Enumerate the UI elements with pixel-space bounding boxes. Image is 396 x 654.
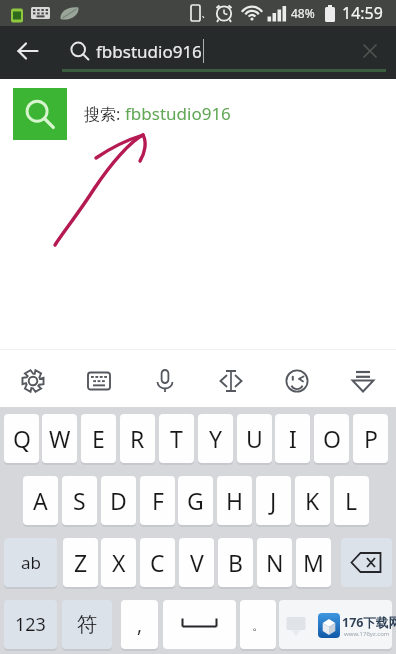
- button[interactable]: Backspace: [341, 538, 392, 587]
- staticText: C: [150, 547, 165, 578]
- button[interactable]: O: [314, 414, 349, 463]
- button[interactable]: Search: [0, 87, 396, 140]
- staticText: fbbstudio916: [96, 40, 202, 63]
- button[interactable]: I: [275, 414, 310, 463]
- staticText: K: [305, 485, 320, 516]
- button[interactable]: M: [296, 538, 331, 587]
- staticText: I: [289, 423, 297, 454]
- staticText: 176下载网: [342, 614, 396, 631]
- staticText: D: [110, 485, 127, 516]
- staticText: M: [303, 547, 324, 578]
- staticText: 搜索:: [84, 103, 125, 125]
- staticText: ab: [21, 551, 41, 574]
- staticText: 123: [15, 612, 46, 637]
- staticText: O: [323, 423, 341, 454]
- button[interactable]: E: [81, 414, 116, 463]
- button[interactable]: F: [140, 476, 175, 525]
- staticText: R: [130, 423, 145, 454]
- staticText: P: [364, 423, 378, 454]
- button[interactable]: V: [179, 538, 214, 587]
- button[interactable]: ab: [4, 538, 57, 587]
- button[interactable]: 。: [240, 600, 276, 649]
- button[interactable]: U: [237, 414, 272, 463]
- button[interactable]: T: [159, 414, 194, 463]
- staticText: 符: [77, 612, 97, 637]
- staticText: S: [73, 485, 86, 516]
- button[interactable]: H: [217, 476, 252, 525]
- staticText: 48%: [291, 5, 315, 21]
- button[interactable]: Y: [198, 414, 233, 463]
- staticText: T: [170, 423, 183, 454]
- staticText: 14:59: [342, 2, 383, 24]
- button[interactable]: X: [101, 538, 136, 587]
- button[interactable]: K: [295, 476, 330, 525]
- staticText: fbbstudio916: [125, 102, 231, 125]
- button[interactable]: N: [257, 538, 292, 587]
- staticText: A: [33, 485, 48, 516]
- button[interactable]: S: [62, 476, 97, 525]
- staticText: H: [226, 485, 244, 516]
- staticText: www.176yz.com: [344, 630, 390, 638]
- button[interactable]: Space: [163, 600, 236, 649]
- button[interactable]: C: [140, 538, 175, 587]
- button[interactable]: Back: [4, 29, 52, 77]
- button[interactable]: fbbstudio916: [62, 26, 352, 79]
- button[interactable]: D: [101, 476, 136, 525]
- button[interactable]: 123: [4, 600, 57, 649]
- staticText: F: [152, 485, 164, 516]
- button[interactable]: Enter: [279, 600, 392, 649]
- staticText: Z: [74, 547, 88, 578]
- staticText: B: [228, 547, 243, 578]
- staticText: X: [112, 547, 126, 578]
- button[interactable]: L: [334, 476, 369, 525]
- button[interactable]: A: [23, 476, 58, 525]
- staticText: Y: [209, 423, 223, 454]
- button[interactable]: G: [178, 476, 213, 525]
- button[interactable]: J: [256, 476, 291, 525]
- button[interactable]: Z: [63, 538, 98, 587]
- button[interactable]: ,: [121, 600, 158, 649]
- button[interactable]: Q: [4, 414, 39, 463]
- staticText: W: [49, 423, 71, 454]
- button[interactable]: W: [42, 414, 77, 463]
- staticText: E: [92, 423, 105, 454]
- button[interactable]: Clear: [348, 31, 392, 75]
- staticText: L: [345, 485, 358, 516]
- button[interactable]: B: [218, 538, 253, 587]
- staticText: G: [187, 485, 204, 516]
- staticText: Q: [13, 423, 31, 454]
- staticText: U: [246, 423, 263, 454]
- staticText: N: [266, 547, 284, 578]
- button[interactable]: 符: [62, 600, 112, 649]
- staticText: ,: [137, 612, 143, 638]
- staticText: V: [190, 547, 204, 578]
- button[interactable]: R: [120, 414, 155, 463]
- button[interactable]: P: [353, 414, 388, 463]
- button[interactable]: Search: [13, 88, 67, 140]
- staticText: J: [270, 485, 277, 516]
- staticText: 。: [252, 617, 265, 633]
